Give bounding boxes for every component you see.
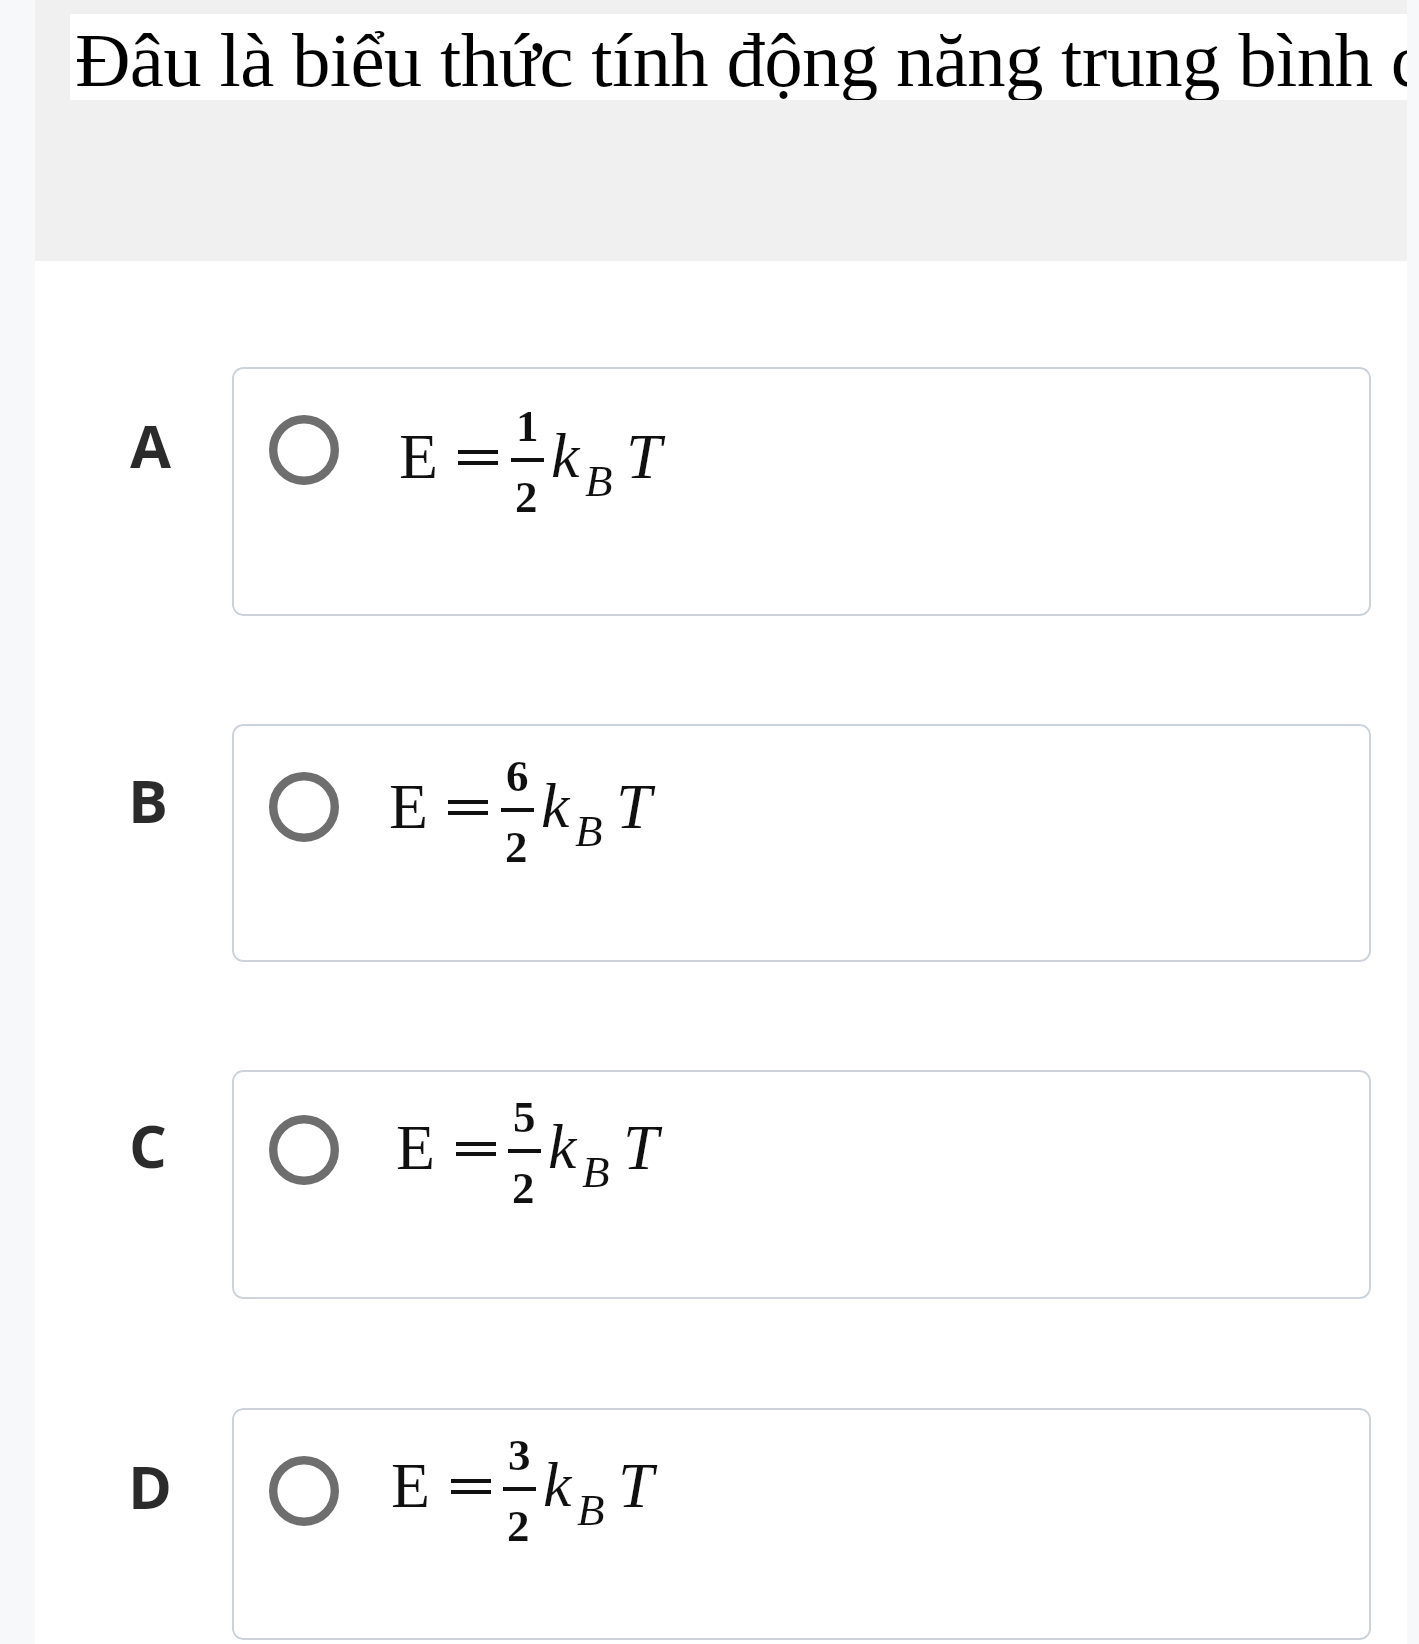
- staticText: B: [585, 456, 613, 506]
- staticText: D: [128, 1445, 173, 1526]
- other: Select answer C: [269, 1115, 339, 1185]
- staticText: k: [541, 770, 570, 841]
- staticText: B: [128, 759, 168, 840]
- button[interactable]: Answer D: [232, 1408, 1371, 1640]
- staticText: 5: [513, 1092, 536, 1142]
- staticText: 2: [512, 1163, 535, 1213]
- staticText: 2: [507, 1501, 530, 1551]
- button[interactable]: Answer C: [232, 1070, 1371, 1299]
- staticText: 2: [505, 822, 528, 872]
- staticText: B: [575, 806, 603, 856]
- button[interactable]: B: [35, 724, 232, 962]
- other: Select answer D: [269, 1456, 339, 1526]
- staticText: T: [616, 771, 652, 842]
- staticText: B: [577, 1485, 605, 1535]
- staticText: E: [396, 1112, 436, 1183]
- staticText: Đâu là biểu thức tính động năng trung bì…: [75, 17, 1407, 100]
- staticText: k: [548, 1111, 577, 1182]
- staticText: 1: [516, 401, 539, 451]
- staticText: A: [130, 404, 172, 485]
- button[interactable]: D: [35, 1408, 232, 1640]
- staticText: T: [623, 1112, 659, 1183]
- other: Select answer B: [269, 772, 339, 842]
- staticText: k: [543, 1449, 572, 1520]
- staticText: T: [618, 1450, 654, 1521]
- button[interactable]: A: [35, 367, 232, 616]
- button[interactable]: Answer B: [232, 724, 1371, 962]
- staticText: 2: [515, 472, 538, 522]
- staticText: T: [626, 421, 662, 492]
- staticText: E: [391, 1450, 431, 1521]
- staticText: k: [551, 420, 580, 491]
- button[interactable]: Answer A: [232, 367, 1371, 616]
- staticText: C: [129, 1104, 167, 1185]
- staticText: 3: [508, 1430, 531, 1480]
- staticText: 6: [506, 751, 529, 801]
- staticText: E: [399, 421, 439, 492]
- other: Select answer A: [269, 415, 339, 485]
- button[interactable]: C: [35, 1070, 232, 1299]
- staticText: E: [389, 771, 429, 842]
- staticText: B: [582, 1147, 610, 1197]
